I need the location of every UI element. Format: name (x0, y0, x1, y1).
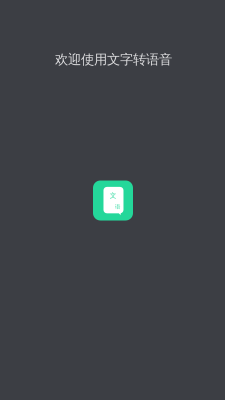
staticText: 语 (115, 203, 120, 210)
staticText: 欢迎使用文字转语音 (55, 51, 172, 68)
staticText: 文 (110, 191, 117, 200)
button[interactable]: 文字转语音 (93, 180, 133, 220)
